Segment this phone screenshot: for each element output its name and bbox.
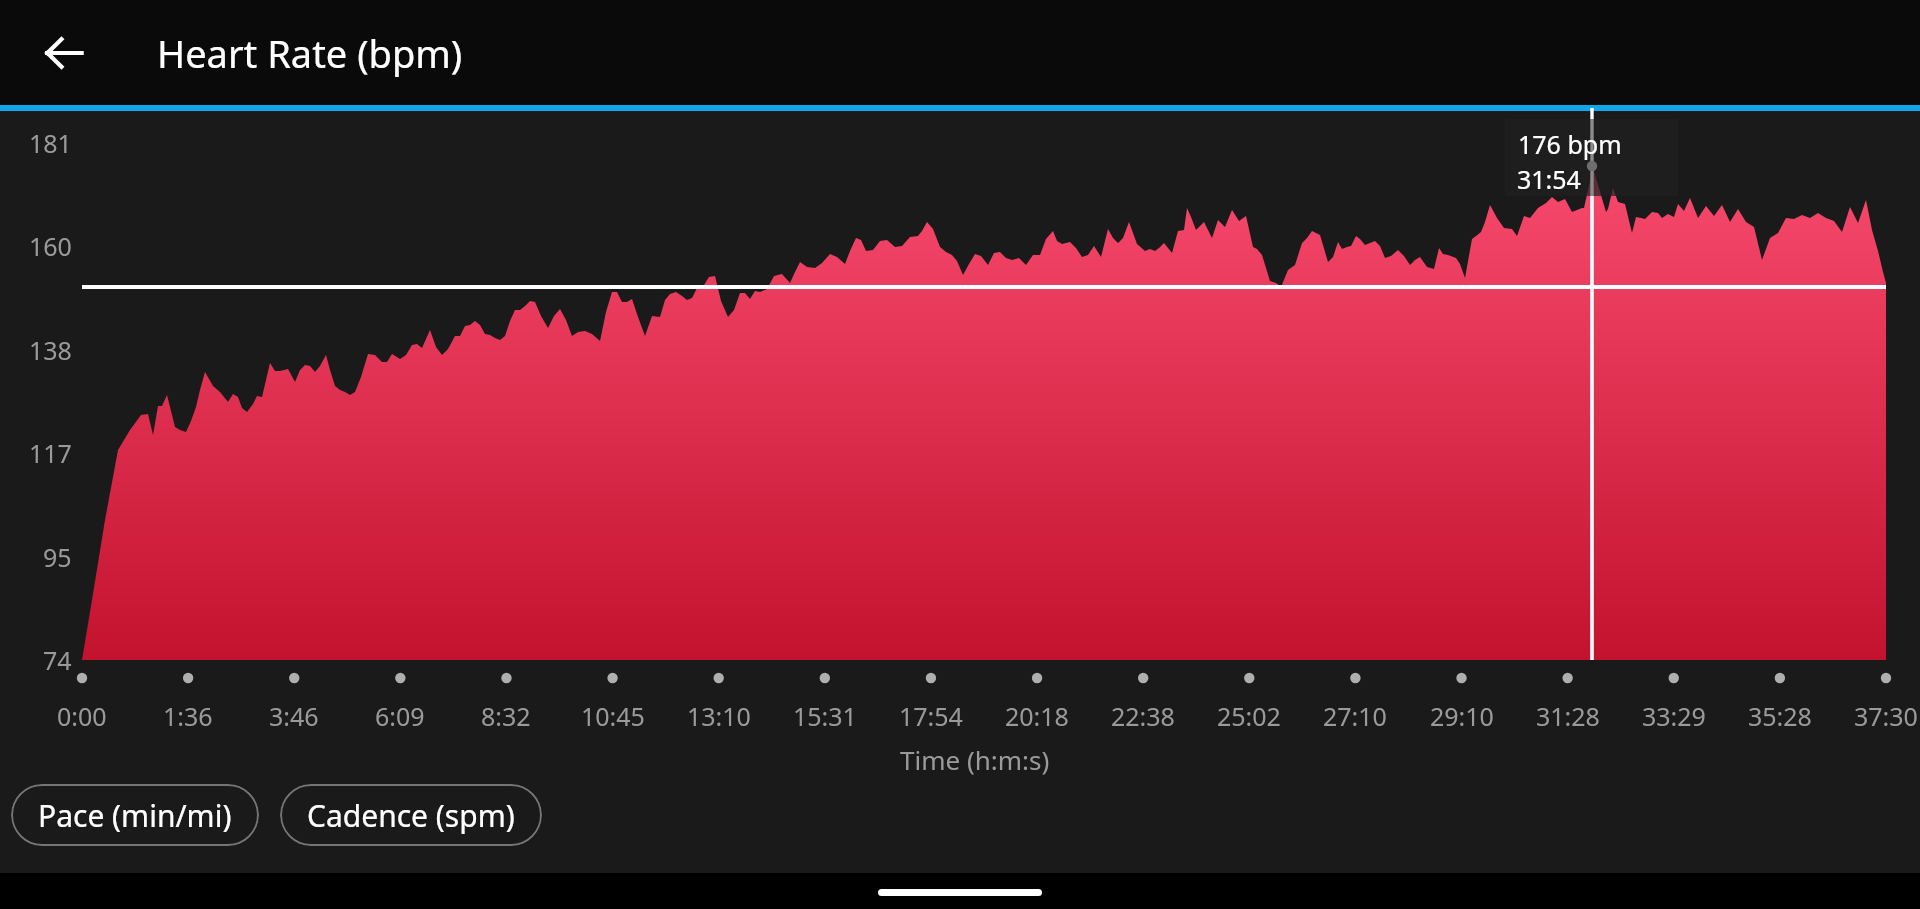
staticText: 25:02: [1217, 699, 1281, 733]
staticText: 33:29: [1642, 699, 1706, 733]
button[interactable]: Back: [33, 22, 95, 84]
staticText: 27:10: [1323, 699, 1387, 733]
button[interactable]: Pace (min/mi): [11, 784, 259, 846]
staticText: 138: [29, 333, 72, 367]
staticText: 0:00: [57, 699, 107, 733]
staticText: 29:10: [1430, 699, 1494, 733]
staticText: 176 bpm: [1518, 127, 1622, 161]
staticText: 37:30: [1854, 699, 1918, 733]
staticText: 8:32: [481, 699, 531, 733]
staticText: 20:18: [1005, 699, 1069, 733]
staticText: 22:38: [1111, 699, 1175, 733]
staticText: 74: [43, 643, 72, 677]
staticText: 160: [29, 229, 72, 263]
staticText: Pace (min/mi): [38, 795, 232, 836]
staticText: 17:54: [899, 699, 963, 733]
staticText: 10:45: [581, 699, 645, 733]
staticText: Heart Rate (bpm): [157, 27, 463, 79]
staticText: 117: [29, 436, 72, 470]
staticText: 31:28: [1536, 699, 1600, 733]
staticText: 6:09: [375, 699, 425, 733]
staticText: 31:54: [1517, 162, 1581, 196]
staticText: 1:36: [163, 699, 213, 733]
staticText: Cadence (spm): [307, 795, 515, 836]
staticText: 95: [43, 540, 72, 574]
staticText: Time (h:m:s): [900, 742, 1050, 777]
button[interactable]: Cadence (spm): [280, 784, 542, 846]
staticText: 3:46: [269, 699, 319, 733]
staticText: 15:31: [793, 699, 857, 733]
staticText: 35:28: [1748, 699, 1812, 733]
staticText: 181: [29, 126, 72, 160]
staticText: 13:10: [687, 699, 751, 733]
